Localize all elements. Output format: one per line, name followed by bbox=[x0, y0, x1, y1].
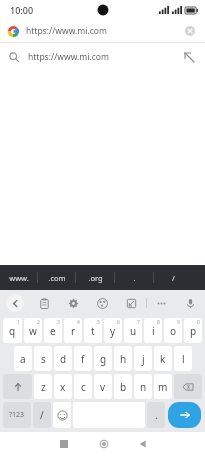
button[interactable]: j bbox=[134, 346, 152, 371]
button[interactable]: https://www.mi.com bbox=[0, 43, 205, 71]
staticText: j bbox=[142, 352, 145, 366]
staticText: w bbox=[29, 324, 37, 338]
staticText: a bbox=[20, 352, 26, 366]
button[interactable]: Home bbox=[84, 432, 123, 456]
staticText: c bbox=[81, 380, 86, 394]
staticText: https://www.mi.com bbox=[26, 25, 107, 37]
staticText: x bbox=[60, 380, 66, 394]
button[interactable]: v bbox=[94, 374, 112, 399]
button[interactable]: q bbox=[3, 318, 22, 343]
button[interactable]: g bbox=[94, 346, 112, 371]
staticText: p bbox=[190, 324, 197, 338]
button[interactable]: / bbox=[33, 402, 51, 428]
button[interactable]: Emoji bbox=[53, 402, 71, 428]
staticText: 7 bbox=[137, 319, 140, 326]
button[interactable]: ?123 bbox=[3, 402, 31, 428]
staticText: n bbox=[140, 380, 147, 394]
staticText: s bbox=[41, 352, 46, 366]
staticText: .org bbox=[88, 273, 103, 283]
staticText: 4 bbox=[77, 319, 80, 326]
staticText: r bbox=[71, 324, 76, 338]
button[interactable]: c bbox=[74, 374, 92, 399]
button[interactable]: f bbox=[74, 346, 92, 371]
button[interactable]: n bbox=[134, 374, 152, 399]
button[interactable]: Clear bbox=[183, 24, 197, 38]
button[interactable]: / bbox=[154, 265, 193, 290]
button[interactable]: Insert suggestion bbox=[182, 50, 196, 64]
button[interactable]: p bbox=[184, 318, 202, 343]
staticText: d bbox=[60, 352, 67, 366]
staticText: https://www.mi.com bbox=[28, 51, 109, 63]
button[interactable]: Settings bbox=[59, 290, 88, 316]
button[interactable]: Back bbox=[123, 432, 162, 456]
button[interactable]: t bbox=[84, 318, 102, 343]
staticText: t bbox=[91, 324, 95, 338]
staticText: e bbox=[50, 324, 56, 338]
button[interactable]: Recent apps bbox=[44, 432, 84, 456]
button[interactable]: Voice input bbox=[176, 290, 205, 316]
button[interactable]: . bbox=[147, 402, 165, 428]
button[interactable]: Backspace bbox=[174, 374, 202, 399]
staticText: www. bbox=[9, 273, 29, 283]
staticText: i bbox=[152, 324, 155, 338]
staticText: z bbox=[41, 380, 46, 394]
staticText: f bbox=[81, 352, 85, 366]
button[interactable]: e bbox=[44, 318, 62, 343]
button[interactable]: o bbox=[164, 318, 182, 343]
staticText: ?123 bbox=[9, 410, 25, 420]
staticText: 8 bbox=[157, 319, 160, 326]
staticText: b bbox=[120, 380, 127, 394]
button[interactable]: z bbox=[34, 374, 52, 399]
staticText: .com bbox=[48, 273, 66, 283]
button[interactable]: x bbox=[54, 374, 72, 399]
staticText: q bbox=[9, 324, 16, 338]
staticText: m bbox=[158, 380, 168, 394]
staticText: 10:00 bbox=[10, 4, 34, 16]
button[interactable]: . bbox=[115, 265, 154, 290]
button[interactable]: s bbox=[34, 346, 52, 371]
button[interactable]: m bbox=[154, 374, 172, 399]
staticText: . bbox=[155, 408, 158, 422]
staticText: 1 bbox=[17, 319, 20, 326]
button[interactable]: More options bbox=[147, 290, 176, 316]
button[interactable]: Resize keyboard bbox=[117, 290, 146, 316]
staticText: / bbox=[172, 273, 175, 283]
button[interactable]: b bbox=[114, 374, 132, 399]
button[interactable]: Go bbox=[168, 402, 201, 428]
staticText: u bbox=[130, 324, 137, 338]
button[interactable]: a bbox=[14, 346, 32, 371]
staticText: g bbox=[100, 352, 107, 366]
staticText: 2 bbox=[37, 319, 40, 326]
button[interactable]: r bbox=[64, 318, 82, 343]
staticText: 9 bbox=[177, 319, 180, 326]
staticText: 0 bbox=[197, 319, 200, 326]
staticText: 6 bbox=[117, 319, 120, 326]
staticText: / bbox=[40, 408, 44, 422]
staticText: y bbox=[110, 324, 116, 338]
button[interactable]: i bbox=[144, 318, 162, 343]
button[interactable]: Shift bbox=[3, 374, 32, 399]
button[interactable]: https://www.mi.com bbox=[0, 20, 205, 42]
staticText: 3 bbox=[57, 319, 60, 326]
button[interactable]: w bbox=[24, 318, 42, 343]
staticText: h bbox=[120, 352, 127, 366]
button[interactable]: Theme bbox=[88, 290, 117, 316]
button[interactable]: h bbox=[114, 346, 132, 371]
staticText: v bbox=[100, 380, 106, 394]
button[interactable]: k bbox=[154, 346, 172, 371]
button[interactable]: u bbox=[124, 318, 142, 343]
staticText: k bbox=[160, 352, 166, 366]
staticText: . bbox=[133, 273, 136, 283]
button[interactable]: d bbox=[54, 346, 72, 371]
button[interactable]: l bbox=[174, 346, 192, 371]
button[interactable]: .org bbox=[76, 265, 115, 290]
button[interactable]: Back bbox=[0, 290, 30, 316]
button[interactable]: .com bbox=[38, 265, 76, 290]
staticText: l bbox=[182, 352, 185, 366]
button[interactable]: y bbox=[104, 318, 122, 343]
staticText: 5 bbox=[97, 319, 100, 326]
button[interactable]: www. bbox=[0, 265, 38, 290]
button[interactable]: Clipboard bbox=[30, 290, 59, 316]
staticText: o bbox=[170, 324, 177, 338]
